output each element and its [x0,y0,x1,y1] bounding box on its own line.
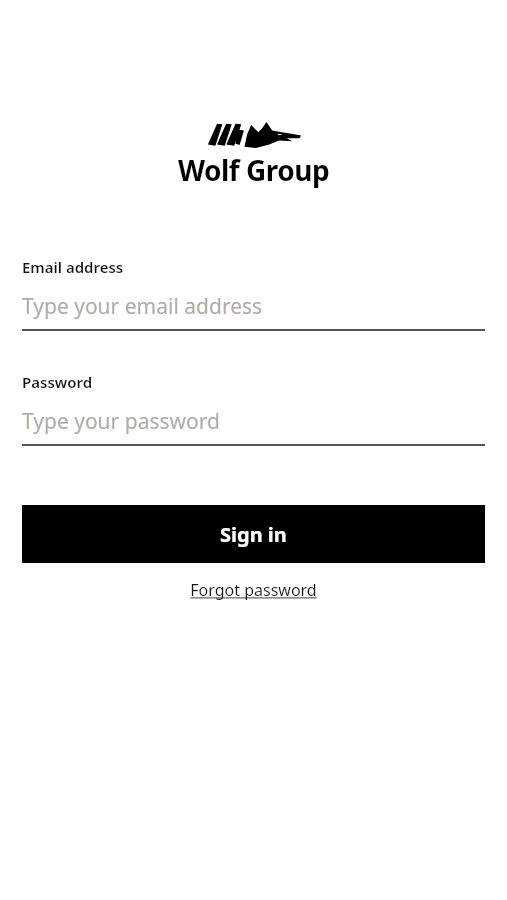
other: Wolf Group logo [206,121,302,149]
staticText: Type your password [22,407,220,436]
staticText: Sign in [220,521,287,548]
button[interactable]: Type your password [22,406,485,436]
staticText: Email address [22,257,124,277]
button[interactable]: Type your email address [22,291,485,321]
staticText: Type your email address [22,292,263,321]
staticText: Wolf Group [178,151,330,189]
staticText: Password [22,372,93,392]
button[interactable]: Sign in [22,505,485,563]
staticText: Forgot password [190,579,317,601]
button[interactable]: Forgot password [190,579,317,601]
